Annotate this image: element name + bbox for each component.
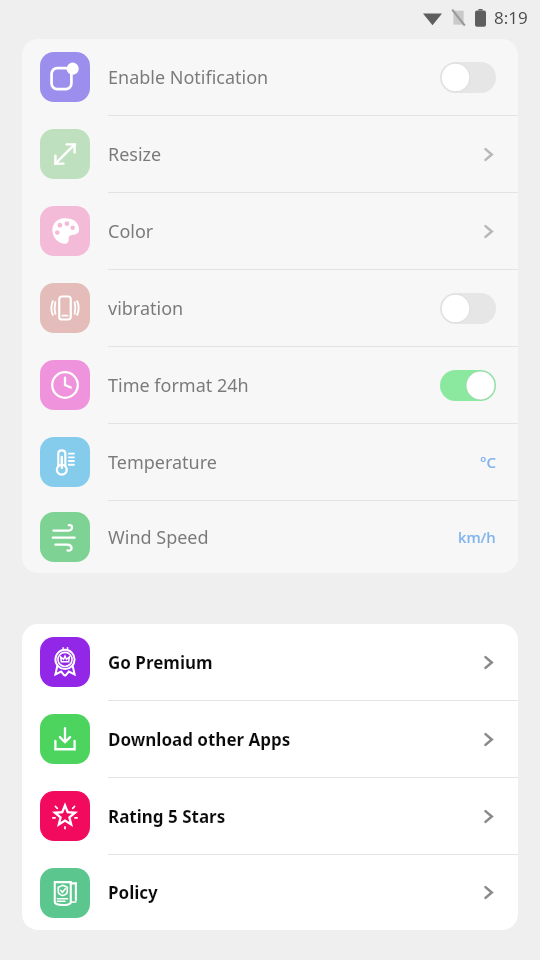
staticText: vibration <box>108 296 184 321</box>
button[interactable]: Resize <box>22 116 518 193</box>
staticText: Go Premium <box>108 651 213 674</box>
button[interactable]: Wind Speed <box>22 501 518 573</box>
staticText: Temperature <box>108 450 217 475</box>
button[interactable]: Enable Notification <box>22 39 518 116</box>
staticText: Rating 5 Stars <box>108 805 226 828</box>
button[interactable]: Go Premium <box>22 624 518 701</box>
staticText: Enable Notification <box>108 65 269 90</box>
button[interactable]: vibration <box>22 270 518 347</box>
button[interactable]: Temperature <box>22 424 518 501</box>
staticText: Policy <box>108 881 158 904</box>
staticText: Download other Apps <box>108 728 291 751</box>
button[interactable]: Download other Apps <box>22 701 518 778</box>
button[interactable]: Time format 24h <box>22 347 518 424</box>
staticText: km/h <box>458 527 496 547</box>
staticText: °C <box>480 452 496 472</box>
staticText: Time format 24h <box>108 373 249 398</box>
staticText: Color <box>108 219 154 244</box>
staticText: 8:19 <box>494 6 528 29</box>
staticText: Wind Speed <box>108 525 209 550</box>
button[interactable]: Color <box>22 193 518 270</box>
button[interactable]: Rating 5 Stars <box>22 778 518 855</box>
button[interactable]: Policy <box>22 855 518 930</box>
staticText: Resize <box>108 142 162 167</box>
